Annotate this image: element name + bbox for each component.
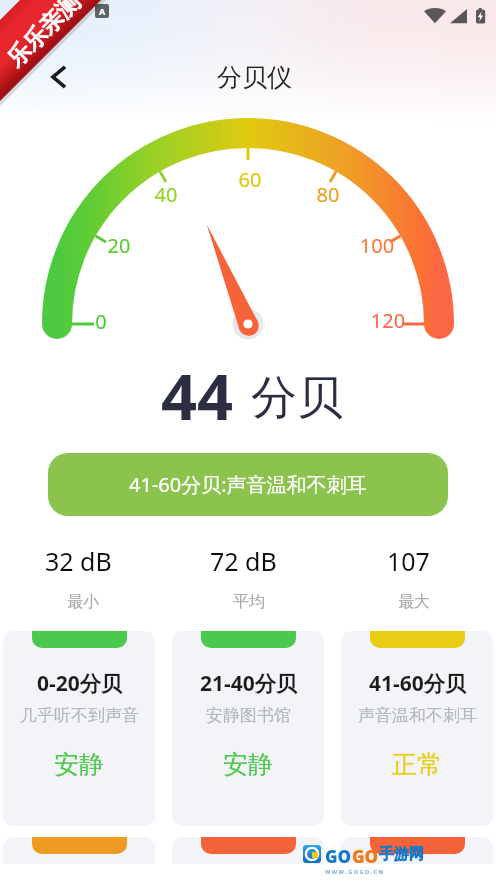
staticText: GO bbox=[325, 845, 352, 868]
staticText: 最大 bbox=[398, 592, 430, 612]
staticText: A bbox=[99, 5, 106, 17]
button[interactable]: Back bbox=[44, 62, 74, 92]
staticText: 分贝仪 bbox=[217, 62, 292, 93]
button[interactable]: 101-120分贝 bbox=[341, 837, 493, 883]
button[interactable]: 61-80分贝 bbox=[3, 837, 155, 883]
staticText: 44 bbox=[161, 353, 234, 429]
staticText: 安静图书馆 bbox=[206, 705, 291, 726]
staticText: 20 bbox=[89, 232, 149, 259]
staticText: 正常 bbox=[392, 749, 442, 780]
staticText: 安静 bbox=[223, 749, 273, 780]
staticText: 32 dB bbox=[45, 544, 112, 578]
staticText: 分贝 bbox=[251, 369, 343, 427]
staticText: 120 bbox=[358, 307, 418, 334]
staticText: 手游网 bbox=[379, 845, 424, 864]
staticText: 乐乐亲测 bbox=[1, 0, 86, 73]
button[interactable]: 41-60分贝:声音温和不刺耳 bbox=[48, 453, 448, 516]
button[interactable]: 81-100分贝 bbox=[172, 837, 324, 883]
staticText: 40 bbox=[136, 181, 196, 208]
staticText: 0-20分贝 bbox=[37, 669, 122, 698]
staticText: 60 bbox=[220, 166, 280, 193]
staticText: 21-40分贝 bbox=[200, 669, 297, 698]
button[interactable]: 41-60分贝 bbox=[341, 631, 493, 826]
staticText: 41-60分贝 bbox=[369, 669, 466, 698]
staticText: 几乎听不到声音 bbox=[20, 705, 139, 726]
staticText: 安静 bbox=[54, 749, 104, 780]
staticText: 100 bbox=[347, 232, 407, 259]
staticText: W W W . G O G O . C N bbox=[325, 868, 384, 875]
staticText: 声音温和不刺耳 bbox=[358, 705, 477, 726]
staticText: 80 bbox=[298, 181, 358, 208]
staticText: 41-60分贝:声音温和不刺耳 bbox=[129, 471, 367, 498]
staticText: 平均 bbox=[233, 592, 265, 612]
staticText: 最小 bbox=[67, 592, 99, 612]
button[interactable]: 21-40分贝 bbox=[172, 631, 324, 826]
staticText: 0 bbox=[71, 308, 131, 335]
staticText: GO bbox=[352, 845, 379, 868]
button[interactable]: 0-20分贝 bbox=[3, 631, 155, 826]
staticText: 107 bbox=[387, 544, 430, 578]
staticText: 72 dB bbox=[210, 544, 277, 578]
